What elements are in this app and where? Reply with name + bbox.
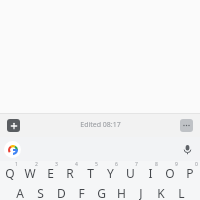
button[interactable]: More options bbox=[180, 119, 193, 132]
button[interactable]: Y bbox=[100, 161, 120, 185]
staticText: 0 bbox=[195, 161, 198, 168]
button[interactable]: O bbox=[160, 161, 180, 185]
button[interactable]: U bbox=[120, 161, 140, 185]
staticText: Edited 08:17 bbox=[80, 120, 121, 130]
staticText: I bbox=[148, 165, 153, 181]
staticText: 7 bbox=[135, 161, 138, 168]
staticText: R bbox=[66, 165, 74, 181]
button[interactable]: K bbox=[151, 185, 171, 200]
staticText: F bbox=[78, 185, 85, 200]
staticText: L bbox=[178, 185, 185, 200]
staticText: P bbox=[186, 165, 194, 181]
staticText: D bbox=[57, 185, 66, 200]
staticText: A bbox=[16, 185, 24, 200]
button[interactable]: Google bbox=[4, 141, 21, 158]
button[interactable]: H bbox=[111, 185, 131, 200]
button[interactable]: Edited 08:17 bbox=[20, 113, 180, 137]
staticText: 5 bbox=[95, 161, 98, 168]
staticText: 4 bbox=[75, 161, 78, 168]
button[interactable]: R bbox=[60, 161, 80, 185]
staticText: 9 bbox=[175, 161, 178, 168]
button[interactable]: L bbox=[171, 185, 191, 200]
staticText: G bbox=[97, 185, 106, 200]
button[interactable]: E bbox=[40, 161, 60, 185]
button[interactable]: P bbox=[180, 161, 200, 185]
staticText: T bbox=[87, 165, 94, 181]
staticText: 8 bbox=[155, 161, 158, 168]
button[interactable]: S bbox=[30, 185, 51, 200]
staticText: Q bbox=[5, 165, 15, 181]
button[interactable]: Add bbox=[7, 119, 20, 132]
button[interactable]: Q bbox=[0, 161, 20, 185]
button[interactable]: W bbox=[20, 161, 40, 185]
staticText: W bbox=[24, 165, 36, 181]
staticText: H bbox=[117, 185, 126, 200]
button[interactable]: A bbox=[9, 185, 30, 200]
staticText: 1 bbox=[15, 161, 18, 168]
staticText: Y bbox=[107, 165, 114, 181]
button[interactable]: J bbox=[131, 185, 151, 200]
button[interactable]: F bbox=[71, 185, 91, 200]
staticText: 6 bbox=[115, 161, 118, 168]
staticText: E bbox=[47, 165, 54, 181]
staticText: 2 bbox=[35, 161, 38, 168]
staticText: 3 bbox=[55, 161, 58, 168]
button[interactable]: G bbox=[91, 185, 111, 200]
button[interactable]: Voice input bbox=[178, 140, 196, 158]
button[interactable]: I bbox=[140, 161, 160, 185]
staticText: J bbox=[139, 185, 143, 200]
staticText: S bbox=[37, 185, 44, 200]
button[interactable]: D bbox=[51, 185, 71, 200]
staticText: K bbox=[157, 185, 165, 200]
staticText: U bbox=[126, 165, 135, 181]
staticText: O bbox=[165, 165, 175, 181]
button[interactable]: T bbox=[80, 161, 100, 185]
